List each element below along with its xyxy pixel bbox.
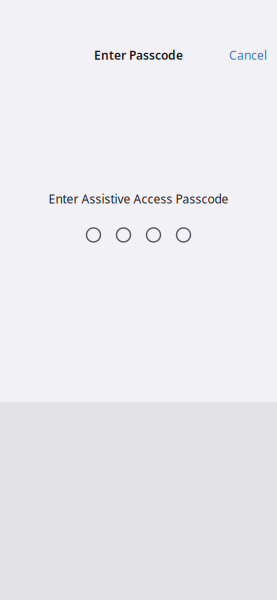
staticText: Enter Passcode xyxy=(94,47,183,63)
staticText: Enter Assistive Access Passcode xyxy=(48,191,228,207)
staticText: Cancel xyxy=(229,47,267,63)
button[interactable]: Cancel xyxy=(222,41,277,69)
